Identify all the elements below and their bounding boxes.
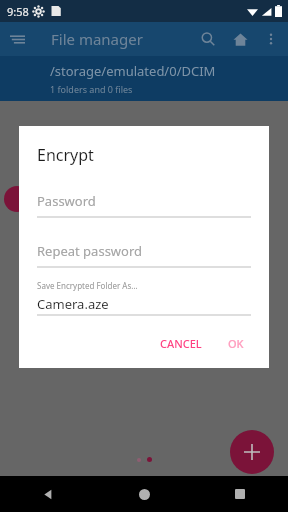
- staticText: Save Encrypted Folder As...: [37, 280, 138, 291]
- staticText: 9:58: [7, 4, 29, 19]
- staticText: Repeat password: [37, 242, 143, 260]
- button[interactable]: Repeat password: [37, 242, 251, 268]
- button[interactable]: Home: [96, 476, 192, 512]
- staticText: Camera.aze: [37, 295, 109, 313]
- button[interactable]: Add: [230, 430, 274, 474]
- button[interactable]: OK: [221, 331, 251, 356]
- button[interactable]: Search: [192, 23, 224, 55]
- staticText: File manager: [51, 29, 143, 49]
- button[interactable]: Camera.aze: [37, 295, 251, 316]
- button[interactable]: Back: [0, 476, 96, 512]
- staticText: 1 folders and 0 files: [50, 83, 133, 95]
- button[interactable]: Password: [37, 192, 251, 218]
- staticText: OK: [228, 336, 244, 351]
- staticText: /storage/emulated/0/DCIM: [50, 62, 216, 80]
- button[interactable]: Open navigation drawer: [0, 22, 34, 56]
- button[interactable]: More options: [256, 24, 286, 54]
- button[interactable]: Recent apps: [192, 476, 288, 512]
- button[interactable]: CANCEL: [153, 331, 209, 356]
- staticText: Encrypt: [37, 144, 94, 166]
- staticText: Password: [37, 192, 96, 210]
- button[interactable]: Home: [224, 23, 256, 55]
- staticText: CANCEL: [160, 336, 202, 351]
